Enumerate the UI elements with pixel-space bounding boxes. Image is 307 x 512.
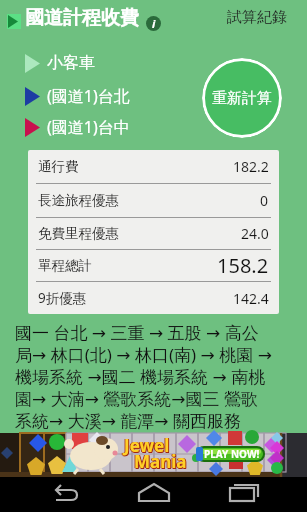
staticText: Mania	[134, 451, 187, 474]
staticText: (國道1)台北	[47, 85, 130, 107]
staticText: 國道計程收費	[25, 6, 139, 30]
button[interactable]	[134, 477, 174, 512]
button[interactable]: 試算紀錄	[223, 4, 291, 31]
staticText: Jewel	[123, 434, 169, 457]
staticText: 小客車	[47, 53, 95, 73]
button[interactable]: 單程總計	[38, 250, 269, 281]
button[interactable]: Jewel	[0, 433, 307, 477]
staticText: 24.0	[241, 224, 269, 243]
staticText: 重新計算	[212, 89, 272, 108]
button[interactable]: 小客車	[25, 53, 95, 73]
staticText: 0	[260, 191, 269, 210]
button[interactable]: (國道1)台北	[25, 85, 130, 107]
button[interactable]: 9折優惠	[38, 282, 269, 314]
staticText: 國一 台北 → 三重 → 五股 → 高公	[15, 321, 259, 343]
staticText: Jewel	[125, 435, 171, 458]
staticText: Mania	[134, 450, 187, 473]
button[interactable]: (國道1)台中	[25, 116, 130, 138]
button[interactable]: 通行費	[38, 150, 269, 183]
button[interactable]	[224, 477, 264, 512]
button[interactable]: 免費里程優惠	[38, 218, 269, 249]
staticText: Jewel	[124, 434, 170, 457]
staticText: Mania	[133, 450, 186, 473]
staticText: Jewel	[125, 434, 171, 457]
staticText: 機場系統 →國二 機場系統 → 南桃	[15, 365, 266, 387]
staticText: 通行費	[38, 158, 79, 175]
staticText: 園→ 大湳→ 鶯歌系統→國三 鶯歌	[15, 387, 258, 409]
button[interactable]	[44, 477, 84, 512]
staticText: 免費里程優惠	[38, 225, 119, 242]
staticText: 長途旅程優惠	[38, 192, 119, 209]
staticText: 142.4	[233, 289, 269, 308]
staticText: PLAY NOW!	[204, 447, 260, 461]
staticText: 系統→ 大溪→ 龍潭→ 關西服務	[15, 409, 241, 431]
staticText: Jewel	[124, 435, 170, 458]
staticText: Mania	[135, 451, 188, 474]
staticText: 182.2	[233, 157, 269, 176]
staticText: 9折優惠	[38, 289, 87, 307]
staticText: Mania	[135, 450, 188, 473]
staticText: i	[152, 16, 156, 31]
button[interactable]: 重新計算	[202, 58, 282, 138]
staticText: 單程總計	[38, 257, 92, 274]
staticText: (國道1)台中	[47, 116, 130, 138]
staticText: 158.2	[217, 252, 269, 279]
button[interactable]: 長途旅程優惠	[38, 184, 269, 217]
staticText: 局→ 林口(北) → 林口(南) → 桃園 →	[15, 343, 272, 365]
staticText: 試算紀錄	[227, 8, 287, 27]
button[interactable]: 國道計程收費	[25, 6, 139, 30]
